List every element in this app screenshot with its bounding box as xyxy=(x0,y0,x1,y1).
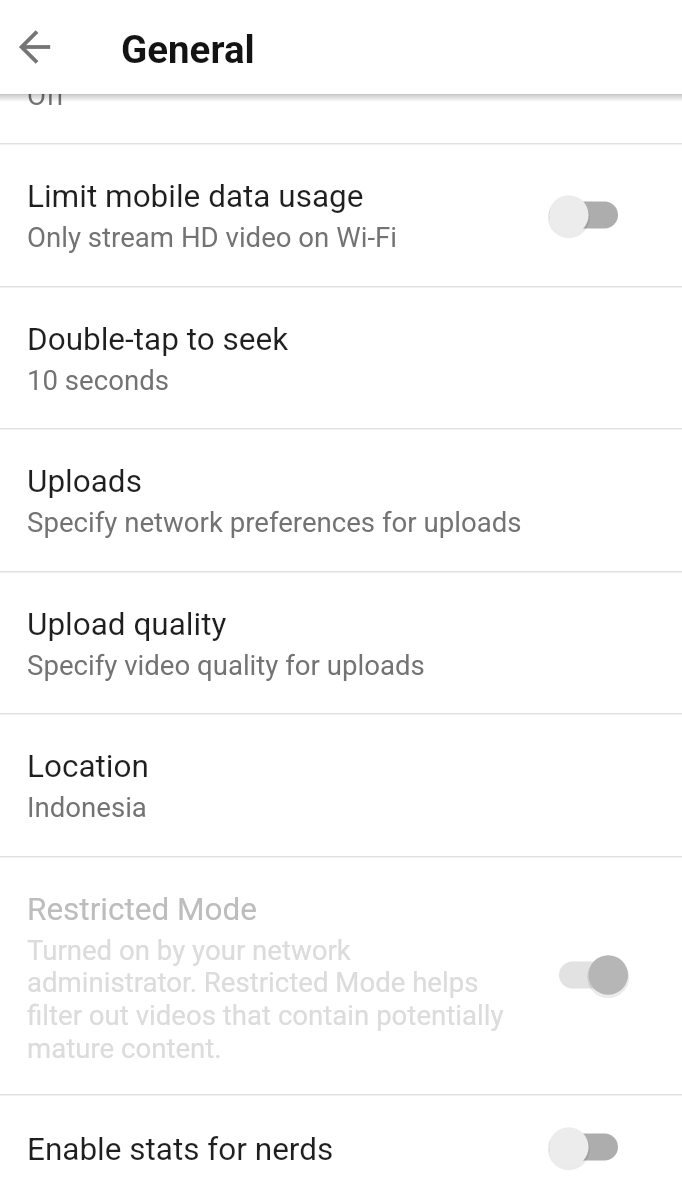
button[interactable]: Restricted Mode, on xyxy=(548,946,639,1004)
staticText: Indonesia xyxy=(27,791,527,823)
staticText: Upload quality xyxy=(27,606,227,643)
staticText: Off xyxy=(27,79,527,111)
button[interactable]: Enable stats for nerds, off xyxy=(538,1118,629,1176)
staticText: Uploads xyxy=(27,463,142,500)
staticText: Specify network preferences for uploads xyxy=(27,506,527,538)
button[interactable]: Location xyxy=(0,713,682,856)
staticText: Double-tap to seek xyxy=(27,321,289,358)
button[interactable]: Navigate up xyxy=(0,0,68,94)
button[interactable]: Upload quality xyxy=(0,571,682,713)
staticText: Restricted Mode xyxy=(27,891,258,928)
staticText: Screen lock xyxy=(27,36,190,73)
staticText: General xyxy=(121,27,255,72)
staticText: Location xyxy=(27,748,149,785)
button[interactable]: Enable stats for nerds xyxy=(0,1094,682,1200)
staticText: Only stream HD video on Wi-Fi xyxy=(27,221,527,253)
button[interactable]: Limit mobile data usage, off xyxy=(538,186,629,244)
button[interactable]: Uploads xyxy=(0,428,682,571)
button[interactable]: Double-tap to seek xyxy=(0,286,682,428)
staticText: Enable stats for nerds xyxy=(27,1131,334,1168)
staticText: Turned on by your network administrator.… xyxy=(27,934,527,1065)
button[interactable]: Restricted Mode xyxy=(0,856,682,1094)
button[interactable]: Screen lock xyxy=(0,1,682,143)
staticText: Limit mobile data usage xyxy=(27,178,364,215)
staticText: 10 seconds xyxy=(27,364,527,396)
button[interactable]: Limit mobile data usage xyxy=(0,143,682,286)
staticText: Specify video quality for uploads xyxy=(27,649,527,681)
